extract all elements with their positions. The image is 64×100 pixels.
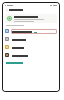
button[interactable]: [11, 29, 57, 34]
button[interactable]: [11, 45, 57, 50]
button[interactable]: Back: [5, 8, 8, 11]
button[interactable]: [11, 53, 57, 58]
button[interactable]: [11, 37, 57, 42]
button[interactable]: [5, 14, 57, 23]
